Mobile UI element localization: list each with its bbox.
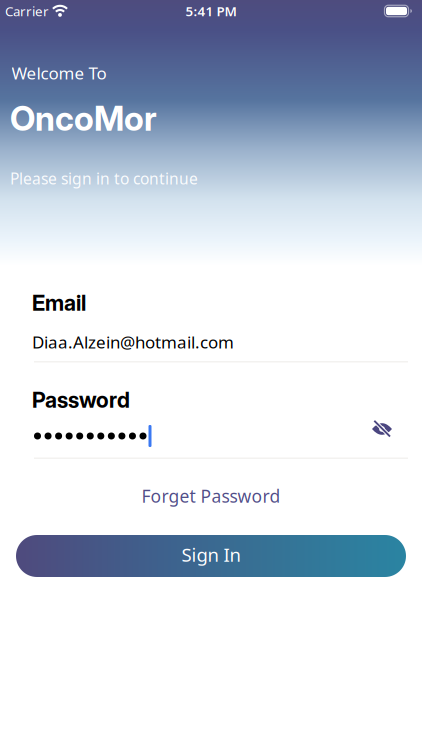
staticText: Forget Password [141,484,280,508]
staticText: Carrier [5,2,49,20]
staticText: Email [32,290,86,316]
staticText: Please sign in to continue [10,168,198,189]
button[interactable]: Show password [370,426,394,446]
button[interactable]: Email field [0,314,408,362]
staticText: Sign In [181,542,240,567]
button[interactable]: Sign In [16,535,406,577]
button[interactable]: Password field [0,411,422,459]
button[interactable]: Forget Password [141,486,280,506]
staticText: Diaa.Alzein@hotmail.com [32,330,234,354]
staticText: Password [32,387,130,413]
staticText: 5:41 PM [185,2,236,20]
staticText: Welcome To [11,61,106,85]
staticText: OncoMor [10,98,157,139]
